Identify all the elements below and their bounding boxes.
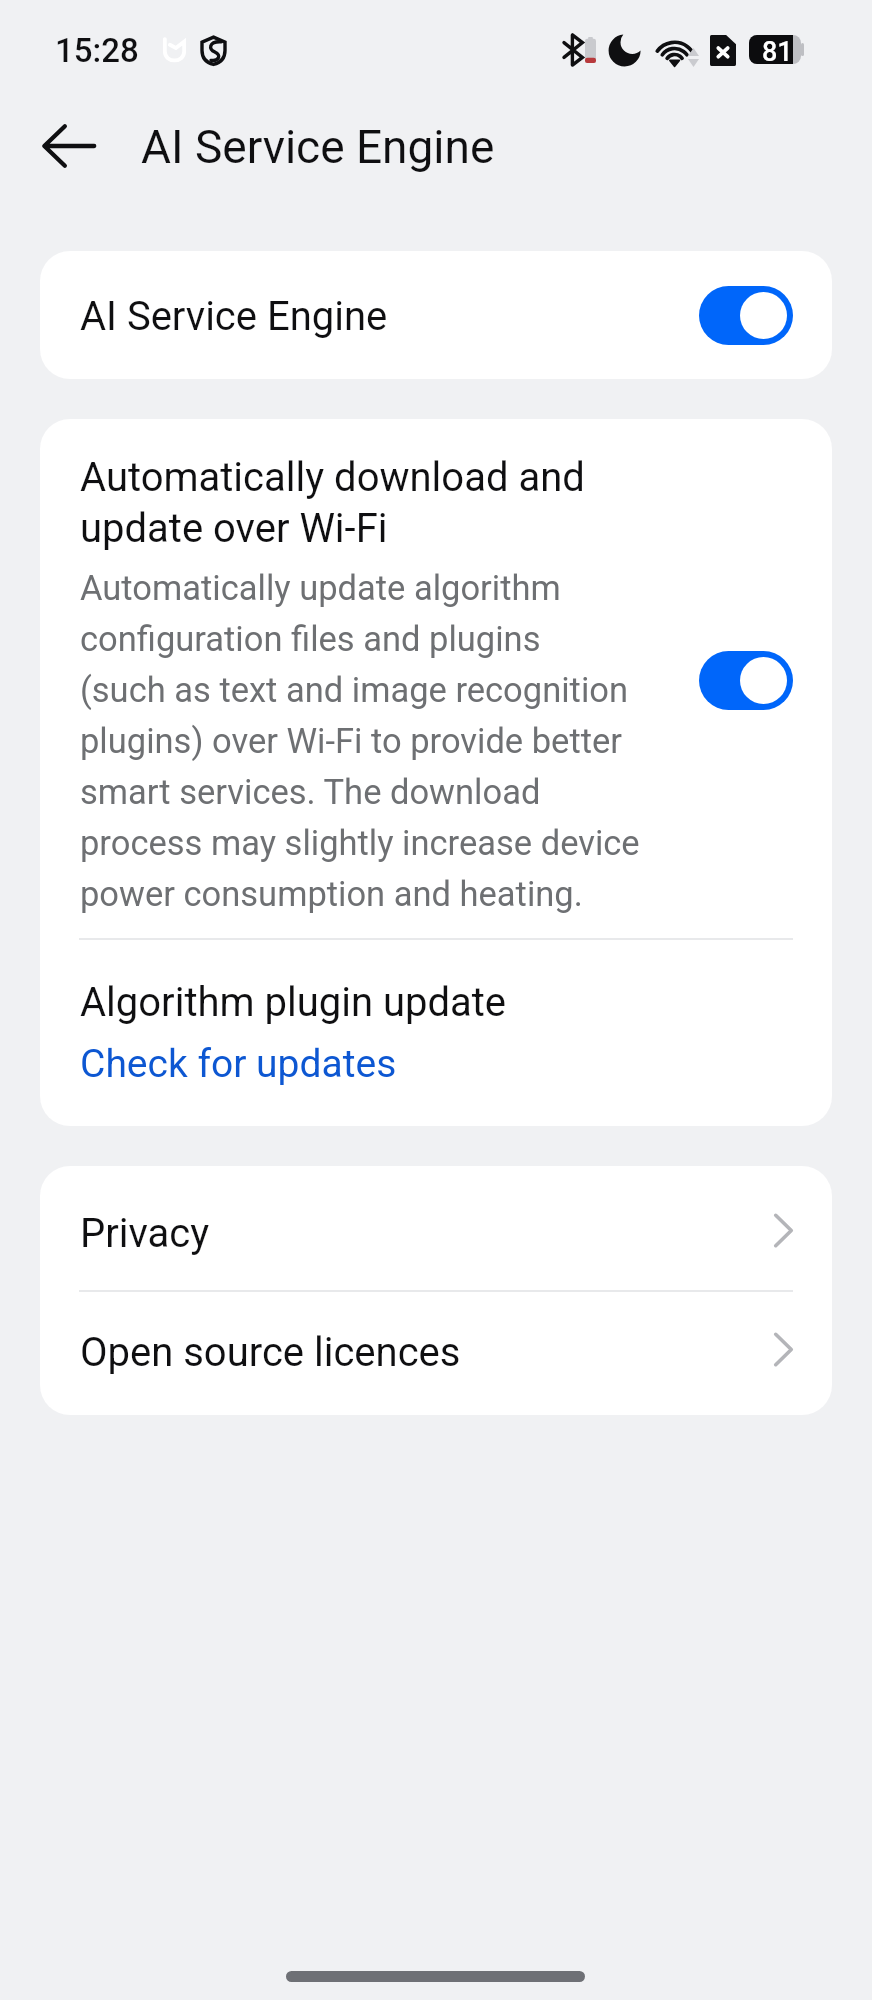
button[interactable]: Check for updates	[80, 1041, 397, 1087]
button[interactable]: Back	[18, 109, 120, 183]
button[interactable]: AI Service Engine	[40, 251, 832, 379]
staticText: Algorithm plugin update	[80, 978, 507, 1026]
button[interactable]: Privacy	[40, 1166, 832, 1290]
staticText: AI Service Engine	[80, 292, 388, 340]
button[interactable]: Open source licences	[40, 1292, 832, 1415]
button[interactable]: Algorithm plugin update	[40, 940, 832, 1032]
button[interactable]: Automatically download and update over W…	[40, 419, 832, 938]
button[interactable]: Toggle	[699, 651, 793, 710]
staticText: 81	[762, 39, 793, 64]
staticText: Privacy	[80, 1209, 210, 1257]
staticText: Open source licences	[80, 1328, 461, 1376]
button[interactable]: Toggle	[699, 286, 793, 345]
staticText: 15:28	[55, 33, 139, 69]
staticText: Check for updates	[80, 1041, 397, 1087]
staticText: AI Service Engine	[141, 119, 495, 175]
staticText: Automatically download and update over W…	[80, 451, 585, 553]
staticText: Automatically update algorithm configura…	[80, 560, 640, 917]
